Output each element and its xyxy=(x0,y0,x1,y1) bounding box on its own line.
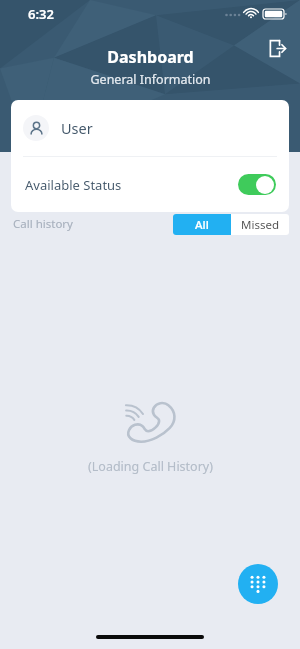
staticText: 6:32 xyxy=(28,5,54,23)
button[interactable]: User xyxy=(11,100,289,156)
staticText: Call history xyxy=(13,216,73,232)
button[interactable]: All xyxy=(173,214,231,235)
button[interactable]: Log out xyxy=(262,33,292,63)
staticText: Missed xyxy=(241,217,279,233)
staticText: All xyxy=(195,217,209,233)
staticText: (Loading Call History) xyxy=(88,458,213,475)
button[interactable]: Available status toggle xyxy=(238,174,276,195)
staticText: General Information xyxy=(90,71,211,88)
staticText: Available Status xyxy=(25,176,122,194)
staticText: Dashboard xyxy=(107,46,194,68)
button[interactable]: Open dialpad xyxy=(238,564,278,604)
staticText: User xyxy=(61,118,93,138)
button[interactable]: Missed xyxy=(231,214,289,235)
button[interactable]: Available Status xyxy=(11,157,289,212)
